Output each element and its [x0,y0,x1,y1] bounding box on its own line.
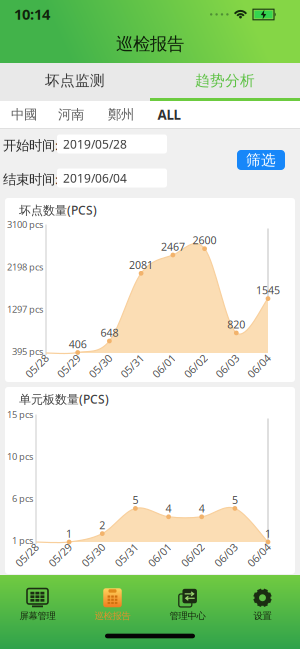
button[interactable]: 管理中心 [150,584,225,626]
staticText: 中國 [11,106,37,123]
staticText: 2600 [193,233,217,247]
staticText: 管理中心 [169,610,205,622]
staticText: 开始时间: [3,136,59,154]
button[interactable]: 河南 [46,101,96,128]
staticText: 1 [265,526,271,541]
button[interactable]: 2019/05/28 [57,134,167,153]
staticText: 4 [166,501,172,515]
button[interactable]: 鄭州 [96,101,146,128]
staticText: 2019/05/28 [63,136,127,152]
staticText: 1 [66,526,72,541]
staticText: 05/30 [79,548,107,562]
staticText: 06/01 [150,359,178,373]
staticText: 鄭州 [108,106,134,123]
staticText: 06/03 [212,548,240,562]
staticText: 1545 [256,283,280,297]
staticText: 2019/06/04 [63,170,127,186]
staticText: 单元板数量(PCS) [19,391,109,407]
staticText: 6 pcs [12,492,33,505]
staticText: 2 [99,518,105,532]
staticText: 10 pcs [7,450,33,463]
staticText: 巡检报告 [116,33,184,55]
staticText: 06/03 [213,359,241,373]
staticText: 5 [232,493,238,507]
staticText: 05/28 [13,548,41,562]
staticText: 3100 pcs [7,218,43,231]
button[interactable]: 设置 [225,584,300,626]
staticText: 05/29 [55,359,83,373]
staticText: 坏点数量(PCS) [19,202,97,218]
staticText: 06/01 [146,548,174,562]
staticText: 趋势分析 [195,71,255,89]
staticText: 05/30 [86,359,114,373]
staticText: 06/02 [182,359,210,373]
staticText: 648 [100,325,118,340]
staticText: 筛选 [246,151,276,169]
staticText: 坏点监测 [45,71,105,89]
button[interactable]: 趋势分析 [150,63,300,98]
staticText: 1297 pcs [7,303,43,315]
staticText: 5 [132,493,138,507]
button[interactable]: 2019/06/04 [57,168,167,187]
staticText: 巡检报告 [94,610,130,622]
staticText: 05/28 [23,359,51,373]
staticText: 结束时间: [3,170,59,188]
staticText: 05/31 [118,359,146,373]
staticText: 06/02 [179,548,207,562]
staticText: 设置 [253,610,271,622]
button[interactable]: 屏幕管理 [0,584,75,626]
staticText: 406 [69,337,87,351]
staticText: 河南 [58,106,84,123]
button[interactable]: 巡检报告 [75,584,150,626]
button[interactable]: 坏点监测 [0,63,150,98]
staticText: 1 pcs [12,534,33,547]
staticText: 06/04 [245,548,273,562]
staticText: 2467 [161,239,185,254]
staticText: 06/04 [245,359,273,373]
button[interactable]: 筛选 [237,150,285,170]
staticText: 屏幕管理 [19,610,55,622]
staticText: 05/31 [112,548,140,562]
staticText: 2081 [129,258,153,272]
button[interactable]: 中國 [2,101,46,128]
staticText: 820 [227,317,245,331]
staticText: 2198 pcs [7,261,43,273]
staticText: 05/29 [46,548,74,562]
staticText: ALL [157,106,180,123]
staticText: 15 pcs [7,408,33,421]
staticText: 10:14 [14,4,50,24]
button[interactable]: ALL [146,101,192,128]
staticText: 4 [199,501,205,515]
staticText: 395 pcs [12,345,43,358]
